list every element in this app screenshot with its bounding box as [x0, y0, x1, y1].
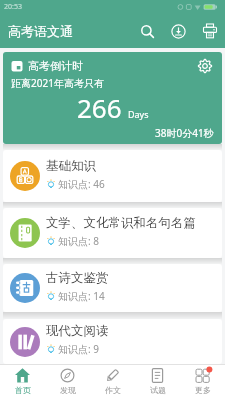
staticText: 作文: [105, 385, 121, 395]
staticText: 知识点: 9: [58, 342, 99, 356]
staticText: 高考倒计时: [28, 59, 83, 73]
button[interactable]: [163, 14, 194, 48]
staticText: 20:53: [4, 2, 22, 12]
button[interactable]: 高考倒计时: [3, 52, 222, 144]
staticText: 发现: [60, 385, 76, 395]
button[interactable]: [194, 14, 225, 48]
staticText: 知识点: 8: [58, 234, 99, 248]
staticText: 古诗文鉴赏: [46, 270, 109, 286]
button[interactable]: [196, 57, 214, 75]
button[interactable]: 发现: [45, 365, 90, 400]
button[interactable]: 基础知识: [3, 150, 222, 202]
staticText: 首页: [15, 385, 31, 395]
button[interactable]: 文学、文化常识和名句名篇: [3, 208, 222, 258]
staticText: 266: [77, 90, 122, 125]
button[interactable]: 更多: [180, 365, 225, 400]
staticText: 文学、文化常识和名句名篇: [46, 215, 196, 231]
staticText: 更多: [195, 385, 211, 395]
staticText: 基础知识: [46, 158, 96, 174]
button[interactable]: 作文: [90, 365, 135, 400]
staticText: 试题: [150, 385, 166, 395]
button[interactable]: [132, 14, 163, 48]
staticText: 38时0分41秒: [155, 126, 214, 140]
button[interactable]: 首页: [0, 365, 45, 400]
staticText: 距离2021年高考只有: [11, 76, 104, 90]
staticText: 现代文阅读: [46, 323, 109, 339]
staticText: 知识点: 14: [58, 289, 105, 303]
staticText: 高考语文通: [8, 23, 73, 39]
staticText: Days: [128, 108, 149, 120]
staticText: 知识点: 46: [58, 177, 105, 191]
button[interactable]: 试题: [135, 365, 180, 400]
button[interactable]: 现代文阅读: [3, 319, 222, 364]
button[interactable]: 古诗文鉴赏: [3, 264, 222, 312]
